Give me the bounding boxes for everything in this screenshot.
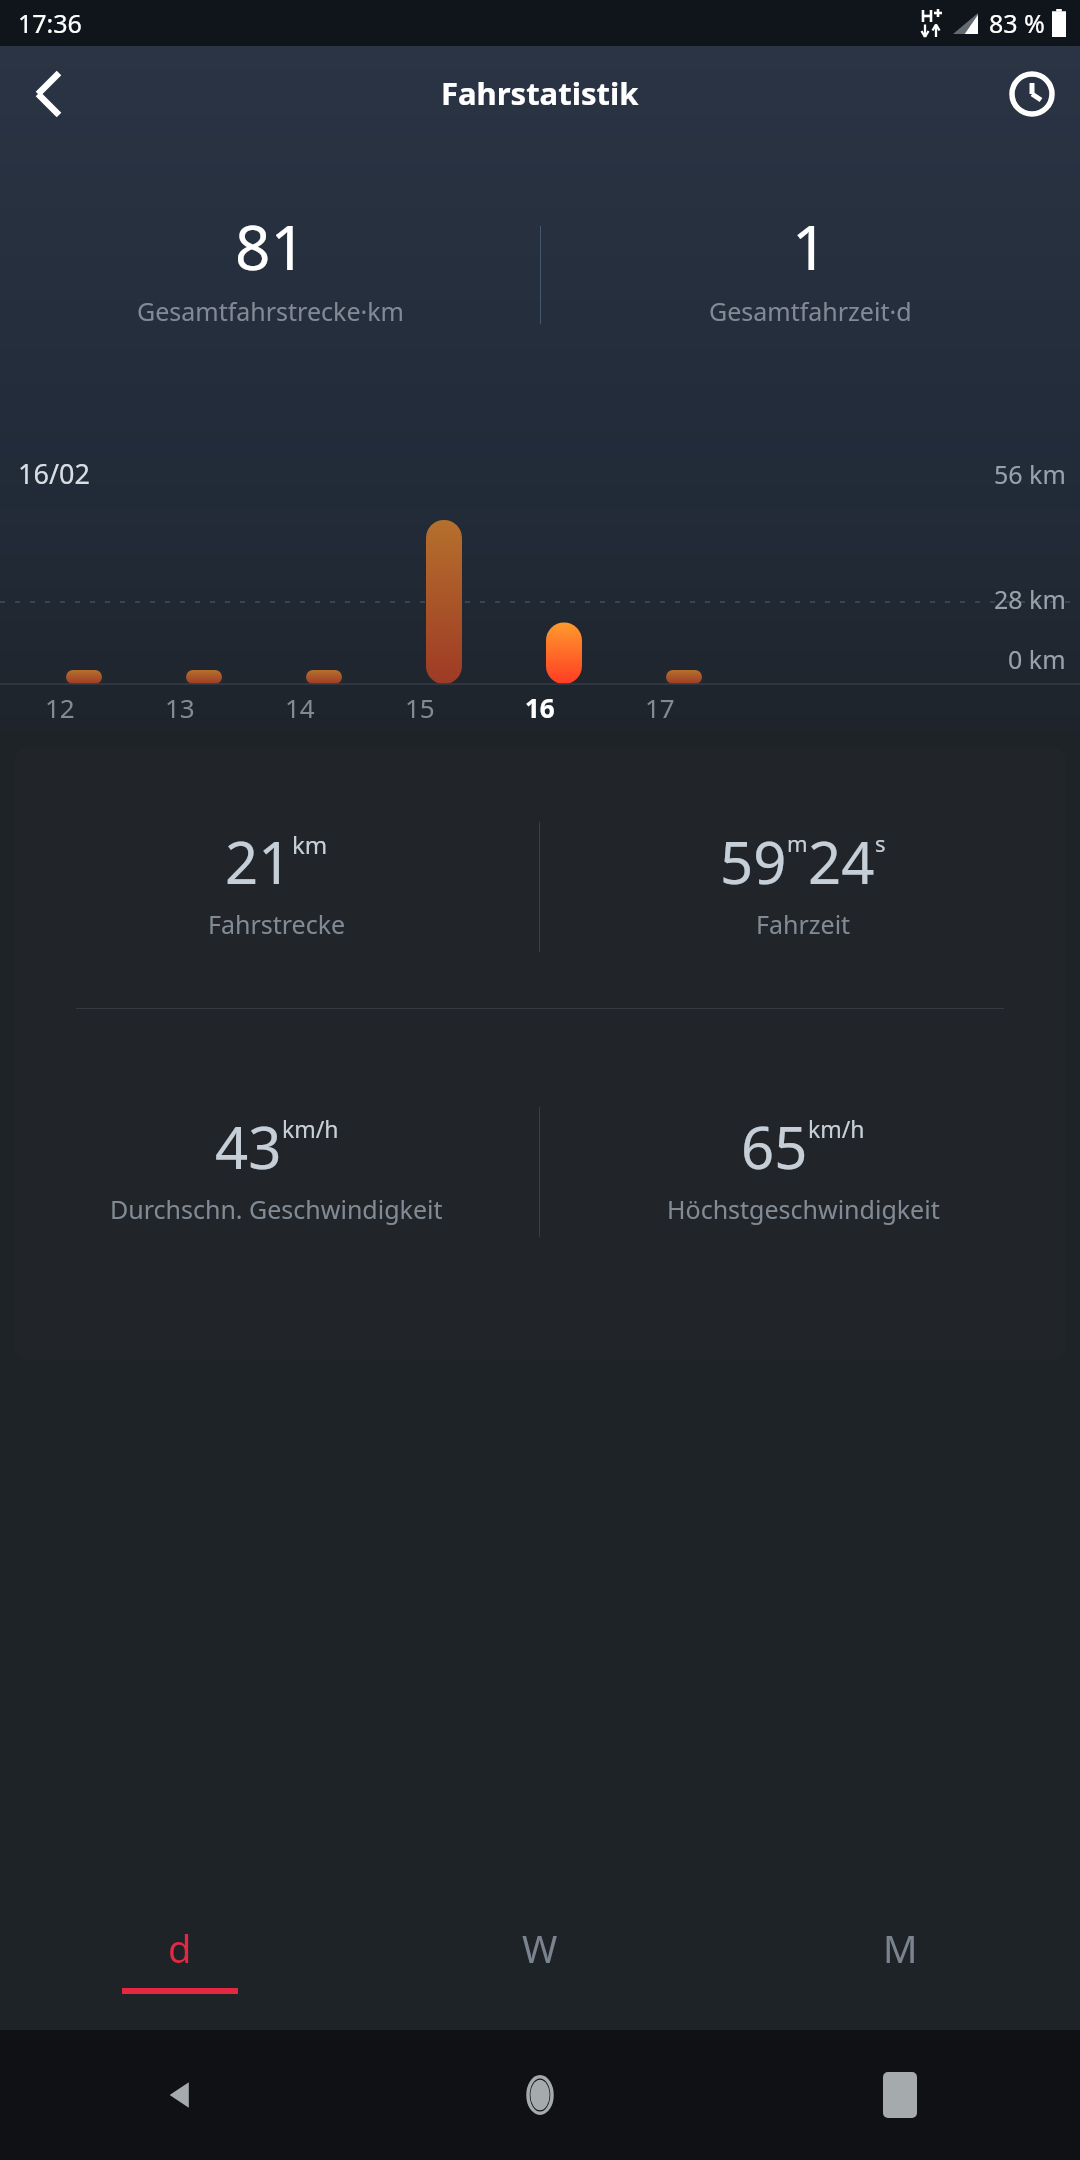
staticText: km/h [282, 1113, 339, 1144]
staticText: 43 [215, 1107, 282, 1186]
button[interactable]: 14 [240, 684, 360, 730]
button[interactable]: Back [0, 46, 96, 142]
staticText: Höchstgeschwindigkeit [667, 1192, 940, 1226]
staticText: s [875, 828, 886, 858]
button[interactable]: W [360, 1900, 720, 2030]
staticText: 56 km [994, 457, 1066, 491]
staticText: 24 [808, 822, 875, 901]
button[interactable]: 13 [120, 684, 240, 730]
staticText: 28 km [994, 582, 1066, 616]
staticText: 16 [525, 690, 555, 725]
button[interactable]: 17 [600, 684, 720, 730]
staticText: W [522, 1922, 558, 1974]
staticText: km/h [808, 1113, 865, 1144]
button[interactable]: 21 [14, 748, 1066, 1360]
staticText: m [787, 828, 808, 858]
staticText: 81 [235, 204, 306, 288]
button[interactable]: Recents [720, 2030, 1080, 2160]
button[interactable]: 12 [0, 684, 120, 730]
button[interactable]: M [720, 1900, 1080, 2030]
staticText: Durchschn. Geschwindigkeit [110, 1192, 443, 1226]
button[interactable]: Home [360, 2030, 720, 2160]
staticText: 59 [720, 822, 787, 901]
staticText: 21 [225, 822, 292, 901]
staticText: Fahrzeit [756, 907, 851, 941]
staticText: 17 [645, 690, 675, 725]
staticText: 12 [45, 690, 75, 725]
staticText: km [292, 828, 328, 861]
staticText: Gesamtfahrstrecke·km [137, 294, 404, 328]
staticText: 65 [741, 1107, 808, 1186]
button[interactable]: Back [0, 2030, 360, 2160]
staticText: Fahrstrecke [208, 907, 346, 941]
button[interactable]: History [984, 46, 1080, 142]
staticText: 16/02 [18, 455, 90, 492]
staticText: 83 % [989, 6, 1045, 40]
staticText: 13 [165, 690, 195, 725]
staticText: 1 [792, 204, 828, 288]
staticText: Gesamtfahrzeit·d [709, 294, 912, 328]
staticText: M [883, 1922, 918, 1974]
staticText: d [168, 1922, 192, 1974]
staticText: 17:36 [18, 6, 82, 40]
button[interactable]: 15 [360, 684, 480, 730]
staticText: 14 [285, 690, 315, 725]
staticText: 15 [405, 690, 435, 725]
button[interactable]: d [0, 1900, 360, 2030]
staticText: Fahrstatistik [441, 72, 639, 114]
staticText: 0 km [1008, 642, 1066, 676]
button[interactable]: 16 [480, 684, 600, 730]
